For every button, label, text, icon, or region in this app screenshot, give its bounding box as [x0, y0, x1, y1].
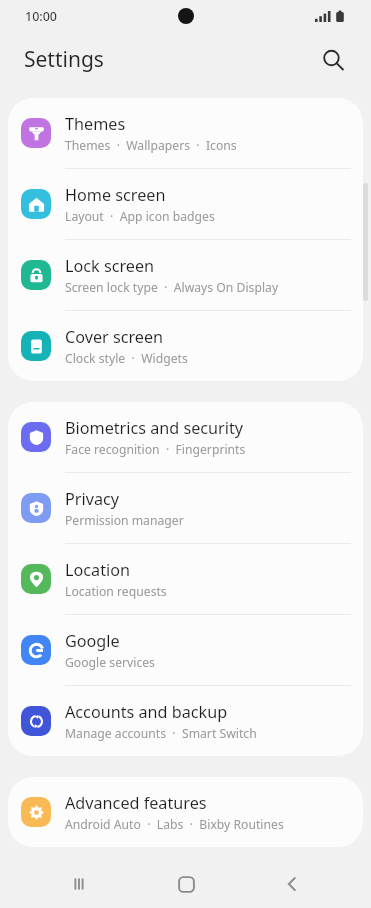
button[interactable]: Lock screen [8, 240, 363, 310]
staticText: Advanced features [65, 792, 207, 814]
staticText: Themes · Wallpapers · Icons [65, 137, 237, 154]
staticText: Themes [65, 113, 126, 135]
staticText: Google services [65, 654, 155, 671]
button[interactable]: Recents [52, 860, 106, 908]
button[interactable]: Back [265, 860, 319, 908]
staticText: Lock screen [65, 255, 155, 277]
staticText: Privacy [65, 488, 119, 510]
staticText: Accounts and backup [65, 701, 228, 723]
staticText: Cover screen [65, 326, 164, 348]
staticText: Permission manager [65, 512, 184, 529]
button[interactable]: Google [8, 615, 363, 685]
button[interactable]: Cover screen [8, 311, 363, 381]
button[interactable]: Privacy [8, 473, 363, 543]
staticText: Home screen [65, 184, 166, 206]
button[interactable]: Themes [8, 98, 363, 168]
staticText: Biometrics and security [65, 417, 244, 439]
button[interactable]: Home screen [8, 169, 363, 239]
button[interactable]: Search [311, 38, 355, 82]
staticText: Screen lock type · Always On Display [65, 279, 279, 296]
staticText: Face recognition · Fingerprints [65, 441, 246, 458]
button[interactable]: Biometrics and security [8, 402, 363, 472]
button[interactable]: Location [8, 544, 363, 614]
staticText: Location requests [65, 583, 167, 600]
staticText: Settings [24, 45, 104, 74]
staticText: Google [65, 630, 120, 652]
button[interactable]: Home [159, 860, 213, 908]
staticText: Clock style · Widgets [65, 350, 188, 367]
staticText: 10:00 [25, 8, 58, 25]
staticText: Location [65, 559, 130, 581]
button[interactable]: Advanced features [8, 777, 363, 847]
staticText: Layout · App icon badges [65, 208, 215, 225]
staticText: Android Auto · Labs · Bixby Routines [65, 816, 284, 833]
button[interactable]: Accounts and backup [8, 686, 363, 756]
staticText: Manage accounts · Smart Switch [65, 725, 257, 742]
